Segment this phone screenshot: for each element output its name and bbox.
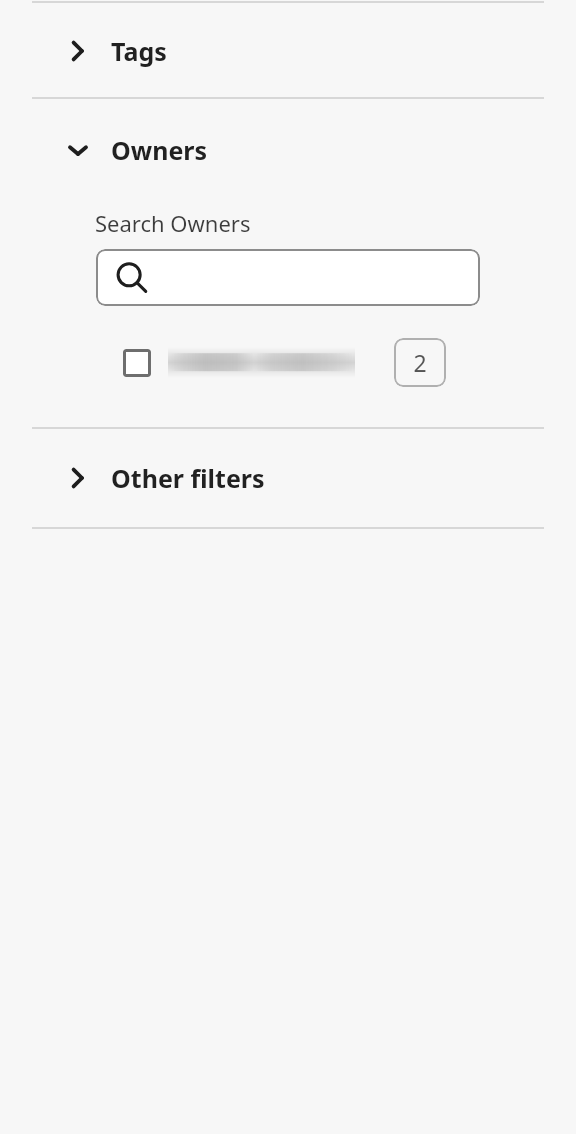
- button[interactable]: Expand section: [0, 429, 576, 527]
- staticText: Search Owners: [95, 208, 251, 238]
- staticText: Tags: [111, 34, 167, 68]
- other: Search: [116, 262, 148, 294]
- button[interactable]: Select owner: [110, 338, 380, 387]
- other: Select owner: [123, 349, 151, 377]
- button[interactable]: Search: [96, 249, 480, 306]
- button[interactable]: 2: [394, 338, 446, 387]
- button[interactable]: Collapse section: [0, 99, 576, 200]
- staticText: Other filters: [111, 461, 265, 495]
- staticText: Owners: [111, 133, 208, 167]
- other: Expand section: [68, 41, 88, 61]
- staticText: 2: [413, 347, 427, 378]
- other: Collapse section: [68, 140, 88, 160]
- other: Expand section: [68, 468, 88, 488]
- button[interactable]: Expand section: [0, 3, 576, 98]
